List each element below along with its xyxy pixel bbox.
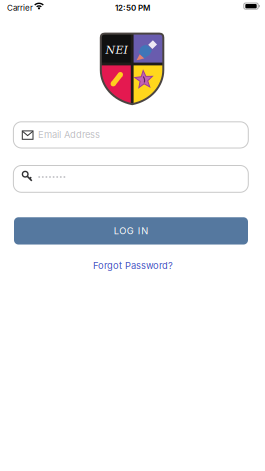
staticText: Carrier: [7, 3, 33, 12]
button[interactable]: LOG IN: [14, 217, 248, 244]
button[interactable]: Forgot Password?: [93, 260, 173, 271]
staticText: Forgot Password?: [93, 260, 173, 271]
staticText: 12:50 PM: [115, 3, 150, 12]
staticText: NEI: [105, 44, 127, 56]
staticText: Email Address: [38, 129, 100, 140]
button[interactable]: Email Address: [13, 122, 248, 148]
staticText: LOG IN: [114, 225, 148, 236]
button[interactable]: Password: [13, 165, 248, 192]
